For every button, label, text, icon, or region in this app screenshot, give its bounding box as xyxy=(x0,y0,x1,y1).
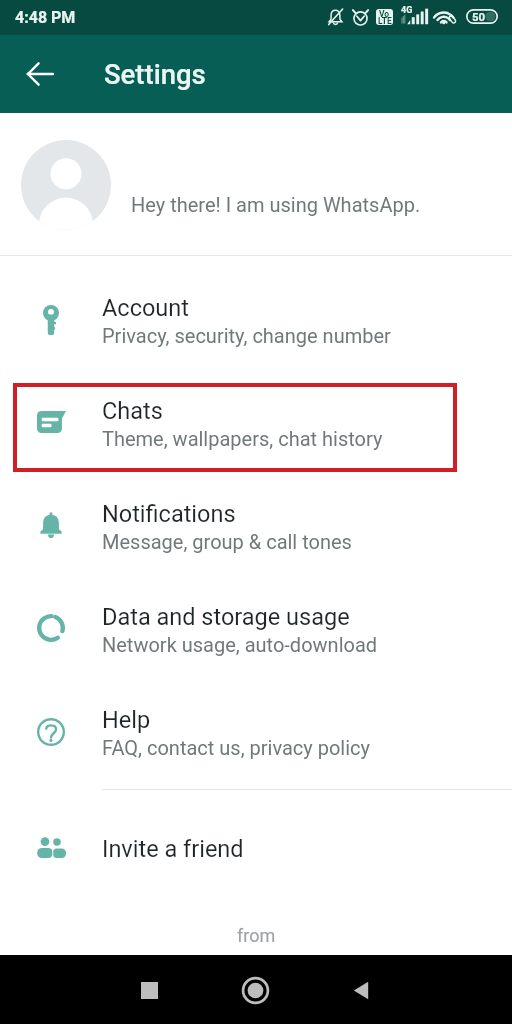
button[interactable]: Home xyxy=(227,962,284,1019)
button[interactable]: Account xyxy=(0,256,512,359)
button[interactable]: Recents xyxy=(121,962,178,1019)
button[interactable]: Back xyxy=(332,962,389,1019)
staticText: Network usage, auto-download xyxy=(102,633,378,656)
staticText: Help xyxy=(102,706,151,734)
button[interactable]: Back xyxy=(16,50,64,98)
staticText: Account xyxy=(102,294,189,322)
staticText: Vo xyxy=(379,9,390,19)
staticText: Hey there! I am using WhatsApp. xyxy=(131,193,421,216)
button[interactable]: Notifications xyxy=(0,462,512,565)
button[interactable]: Hey there! I am using WhatsApp. xyxy=(0,113,512,255)
staticText: Theme, wallpapers, chat history xyxy=(102,427,383,450)
button[interactable]: Data and storage usage xyxy=(0,565,512,668)
button[interactable]: Help xyxy=(0,668,512,771)
button[interactable]: Invite a friend xyxy=(0,797,512,900)
staticText: from xyxy=(237,925,276,946)
staticText: 4:48 PM xyxy=(15,8,76,27)
staticText: 4G xyxy=(401,5,413,16)
staticText: Invite a friend xyxy=(102,835,244,863)
staticText: Notifications xyxy=(102,500,236,528)
staticText: Settings xyxy=(104,58,206,90)
button[interactable]: Chats xyxy=(0,359,512,462)
staticText: FAQ, contact us, privacy policy xyxy=(102,736,371,759)
staticText: Privacy, security, change number xyxy=(102,324,391,347)
staticText: Chats xyxy=(102,397,163,425)
staticText: Data and storage usage xyxy=(102,603,350,631)
staticText: 50 xyxy=(472,10,486,23)
staticText: LTE xyxy=(378,16,392,26)
staticText: Message, group & call tones xyxy=(102,530,352,553)
